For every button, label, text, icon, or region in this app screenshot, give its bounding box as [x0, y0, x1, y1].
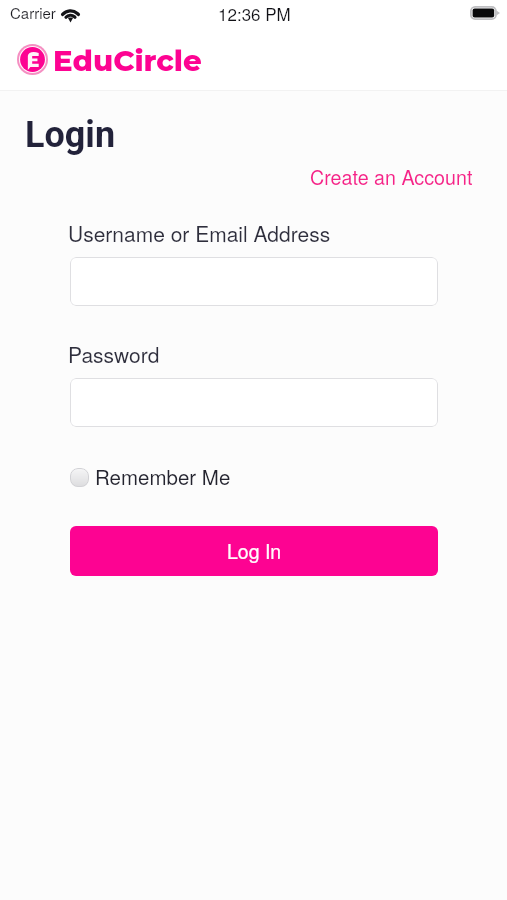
- button[interactable]: Username or Email Address: [70, 257, 438, 306]
- staticText: EduCircle: [53, 43, 202, 79]
- button[interactable]: Remember Me: [70, 461, 231, 490]
- staticText: 12:36 PM: [218, 1, 291, 25]
- staticText: Log In: [227, 537, 282, 565]
- button[interactable]: Log In: [70, 526, 438, 576]
- other: Wi-Fi: [61, 7, 80, 21]
- other: Battery full: [470, 6, 500, 20]
- staticText: Username or Email Address: [68, 218, 331, 248]
- staticText: Carrier: [10, 2, 56, 23]
- staticText: Login: [25, 114, 116, 156]
- button[interactable]: Create an Account: [310, 162, 473, 190]
- button[interactable]: Password: [70, 378, 438, 427]
- staticText: Remember Me: [95, 461, 231, 490]
- button[interactable]: EduCircle home: [17, 43, 202, 79]
- staticText: Password: [68, 339, 160, 369]
